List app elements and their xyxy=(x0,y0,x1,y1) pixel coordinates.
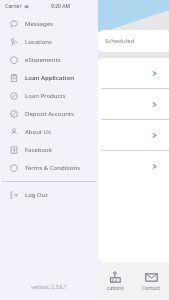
button[interactable]: Messages xyxy=(0,15,98,33)
staticText: Terms & Conditions xyxy=(25,164,81,172)
button[interactable]: Locations xyxy=(0,33,98,51)
button[interactable]: Open detail xyxy=(97,89,169,119)
button[interactable]: Open detail xyxy=(97,58,169,88)
other: Open detail xyxy=(152,164,157,169)
button[interactable]: Facebook xyxy=(0,141,98,159)
staticText: version: 2.3.6.1 xyxy=(31,284,67,291)
staticText: eStatements xyxy=(25,56,61,64)
staticText: Loan Application xyxy=(25,74,75,82)
other: Open detail xyxy=(152,133,157,138)
button[interactable]: Loan Products xyxy=(0,87,98,105)
button[interactable]: Open detail xyxy=(97,151,169,181)
staticText: Scheduled xyxy=(105,37,135,45)
staticText: Messages xyxy=(25,20,53,28)
other: Open detail xyxy=(152,71,157,76)
other: Open detail xyxy=(152,102,157,107)
staticText: 9:20 AM xyxy=(51,3,71,10)
staticText: Locations xyxy=(25,38,52,46)
button[interactable]: eStatements xyxy=(0,51,98,69)
button[interactable]: Deposit Accounts xyxy=(0,105,98,123)
staticText: cations xyxy=(107,285,124,292)
staticText: About Us xyxy=(25,128,51,136)
button[interactable]: Loan Application xyxy=(0,69,98,87)
button[interactable]: Terms & Conditions xyxy=(0,159,98,177)
staticText: Contact xyxy=(142,285,161,292)
staticText: Log Out xyxy=(25,191,48,199)
staticText: Loan Products xyxy=(25,92,66,100)
staticText: Deposit Accounts xyxy=(25,110,74,118)
button[interactable]: Open detail xyxy=(97,120,169,150)
button[interactable]: Scheduled xyxy=(97,30,169,52)
staticText: Carrier xyxy=(5,3,22,10)
button[interactable]: Contact xyxy=(133,262,169,300)
button[interactable]: About Us xyxy=(0,123,98,141)
button[interactable]: cations xyxy=(97,262,133,300)
button[interactable]: Log Out xyxy=(0,186,98,204)
staticText: Facebook xyxy=(25,146,52,154)
